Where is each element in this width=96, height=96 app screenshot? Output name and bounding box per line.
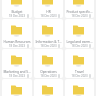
button[interactable]: Archive xyxy=(65,79,94,96)
staticText: Information & Tactics xyxy=(35,40,62,44)
button[interactable]: More options xyxy=(88,14,92,18)
staticText: 18 Dec 2023 xyxy=(8,74,26,78)
staticText: 18 Dec 2023 xyxy=(40,44,57,48)
button[interactable]: More options xyxy=(88,44,92,48)
staticText: 18 Dec 2023 xyxy=(40,74,57,78)
button[interactable]: Legal and exemplars xyxy=(65,19,94,48)
staticText: 18 Dec 2023 xyxy=(8,14,26,18)
staticText: Product specifications xyxy=(66,10,93,14)
staticText: Legal and exemplars xyxy=(66,40,93,44)
button[interactable]: Human Resources xyxy=(2,19,32,48)
staticText: 18 Dec 2023 xyxy=(71,74,88,78)
staticText: Human Resources xyxy=(3,40,31,44)
button[interactable]: Design assets xyxy=(2,79,32,96)
button[interactable]: Budget xyxy=(2,0,32,18)
button[interactable]: Product specifications xyxy=(65,0,94,18)
button[interactable]: Research xyxy=(34,79,63,96)
button[interactable]: More options xyxy=(26,44,30,48)
button[interactable]: More options xyxy=(57,14,61,18)
button[interactable]: Operations xyxy=(34,49,63,78)
staticText: Marketing and Sales xyxy=(3,70,31,74)
button[interactable]: More options xyxy=(26,14,30,18)
staticText: Travel xyxy=(66,70,93,74)
staticText: 18 Dec 2023 xyxy=(71,44,88,48)
button[interactable]: HR xyxy=(34,0,63,18)
button[interactable]: More options xyxy=(26,74,30,78)
button[interactable]: Marketing and Sales xyxy=(2,49,32,78)
staticText: 18 Dec 2023 xyxy=(71,14,88,18)
staticText: Budget xyxy=(3,10,31,14)
staticText: HR xyxy=(35,10,62,14)
staticText: 18 Dec 2023 xyxy=(8,44,26,48)
staticText: Operations xyxy=(35,70,62,74)
button[interactable]: More options xyxy=(88,74,92,78)
staticText: 18 Dec 2023 xyxy=(40,14,57,18)
button[interactable]: Information & Tactics xyxy=(34,19,63,48)
button[interactable]: Travel xyxy=(65,49,94,78)
button[interactable]: More options xyxy=(57,74,61,78)
button[interactable]: More options xyxy=(57,44,61,48)
